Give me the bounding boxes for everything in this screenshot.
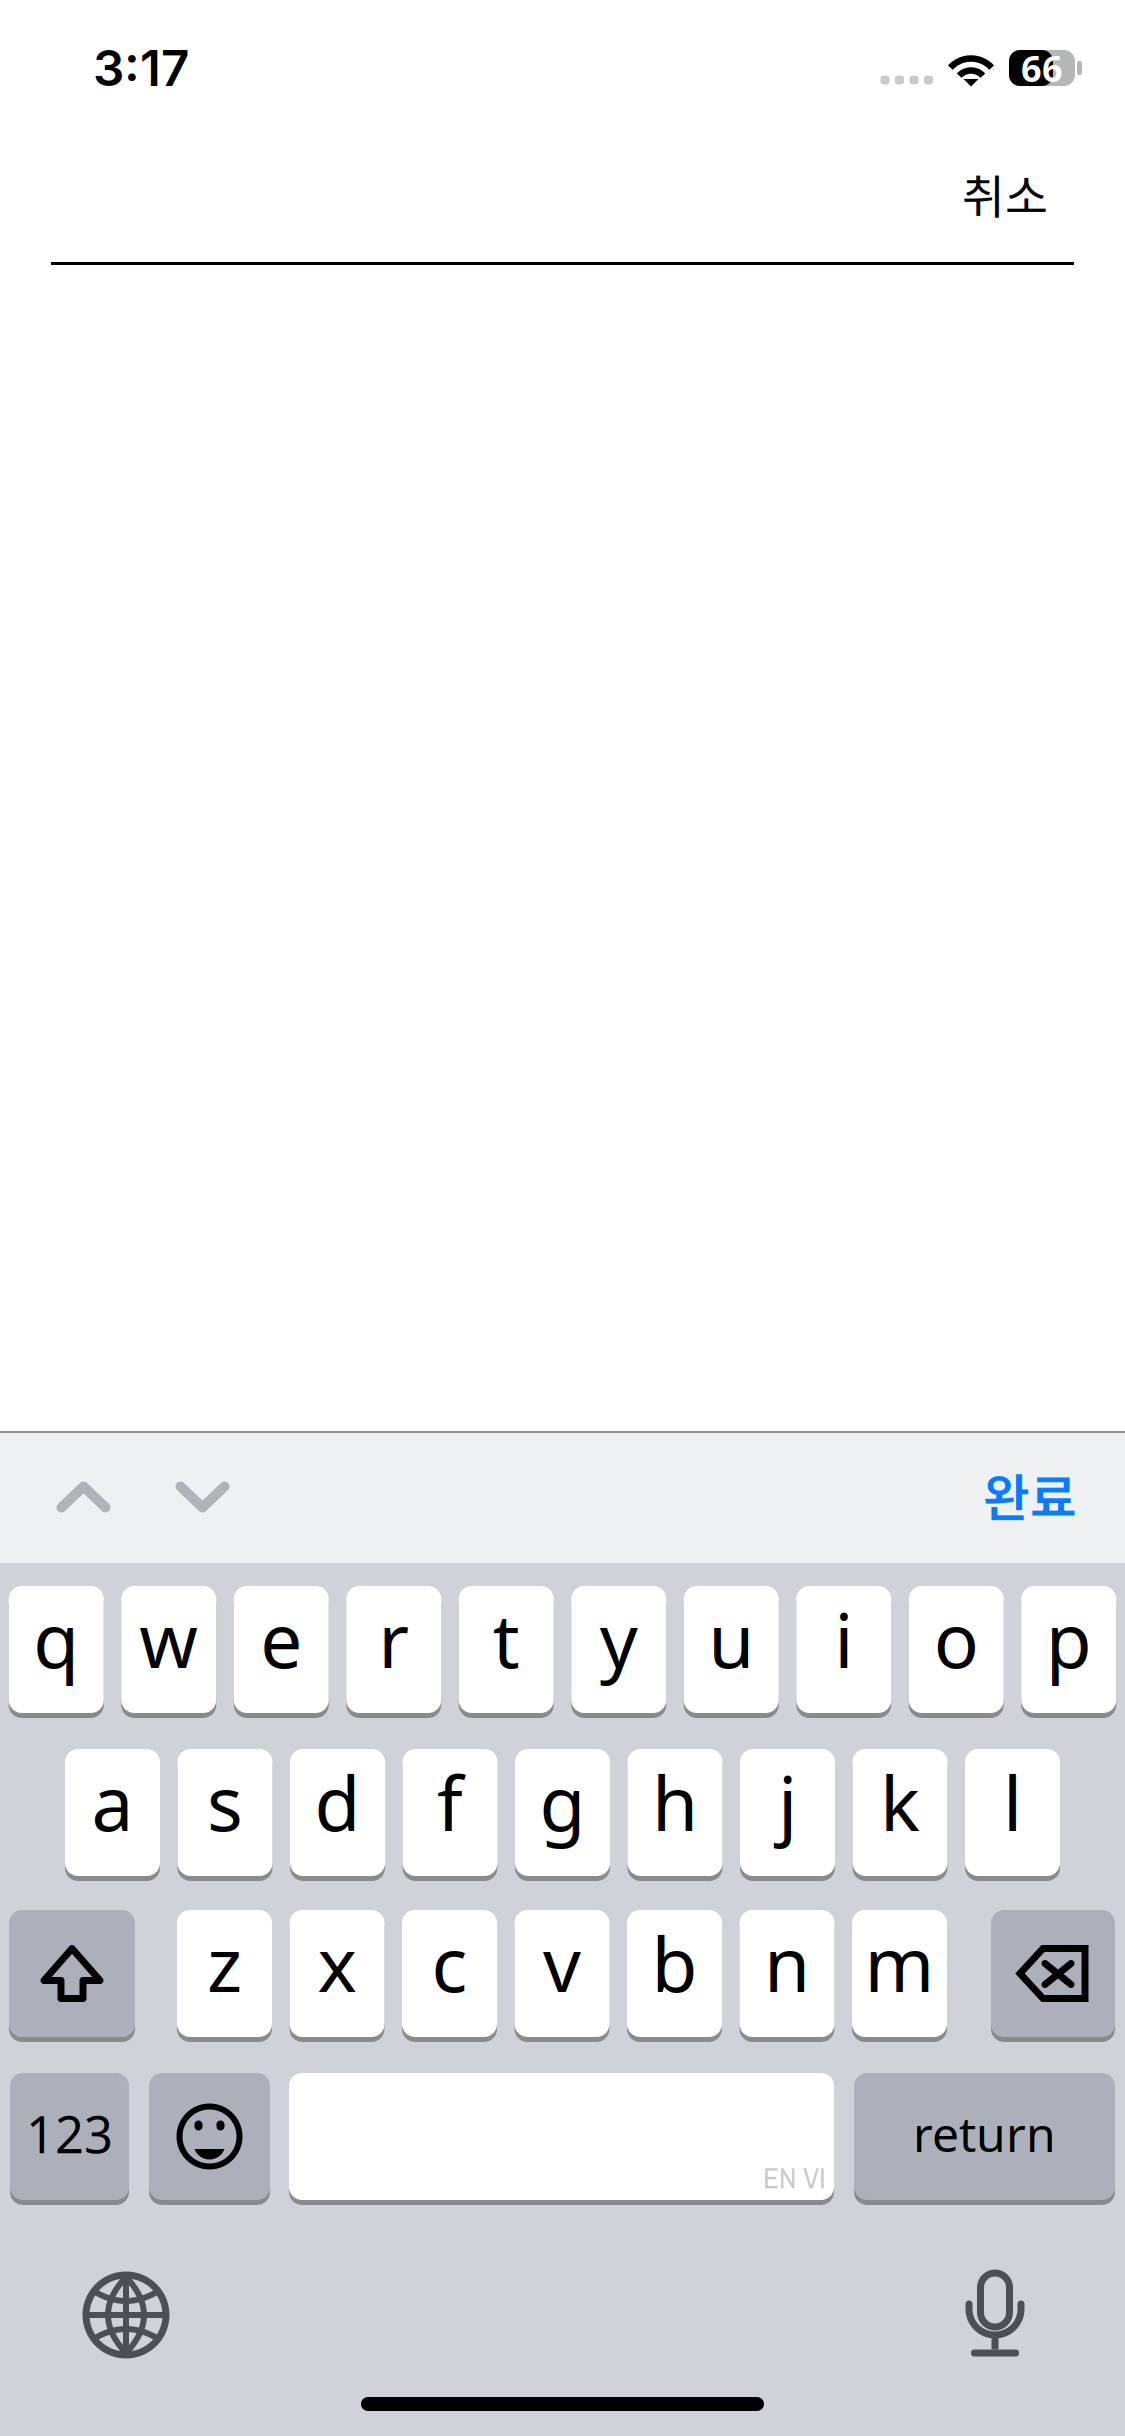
button[interactable]: return: [854, 2073, 1115, 2205]
button[interactable]: a: [65, 1749, 160, 1881]
button[interactable]: 완료: [983, 1458, 1077, 1536]
staticText: q: [33, 1589, 79, 1689]
button[interactable]: b: [627, 1910, 722, 2042]
staticText: k: [880, 1752, 920, 1852]
button[interactable]: n: [739, 1910, 834, 2042]
staticText: w: [139, 1589, 198, 1689]
button[interactable]: 취소: [962, 141, 1125, 227]
button[interactable]: Next field: [143, 1431, 262, 1563]
button[interactable]: q: [9, 1586, 104, 1718]
staticText: t: [493, 1589, 520, 1689]
staticText: d: [314, 1752, 360, 1852]
button[interactable]: h: [627, 1749, 722, 1881]
button[interactable]: Previous field: [24, 1431, 143, 1563]
button[interactable]: d: [290, 1749, 385, 1881]
button[interactable]: f: [402, 1749, 497, 1881]
button[interactable]: o: [909, 1586, 1004, 1718]
button[interactable]: m: [852, 1910, 947, 2042]
button[interactable]: k: [852, 1749, 947, 1881]
staticText: r: [378, 1589, 409, 1689]
button[interactable]: s: [177, 1749, 272, 1881]
button[interactable]: e: [234, 1586, 329, 1718]
button[interactable]: y: [571, 1586, 666, 1718]
button[interactable]: Shift: [9, 1910, 135, 2042]
staticText: a: [91, 1752, 133, 1852]
staticText: g: [539, 1752, 585, 1852]
button[interactable]: p: [1021, 1586, 1116, 1718]
button[interactable]: t: [459, 1586, 554, 1718]
staticText: x: [317, 1913, 356, 2013]
staticText: return: [913, 2102, 1056, 2165]
button[interactable]: Delete: [991, 1910, 1115, 2042]
staticText: h: [652, 1752, 698, 1852]
staticText: z: [207, 1913, 242, 2013]
staticText: c: [431, 1913, 467, 2013]
staticText: 취소: [962, 160, 1048, 227]
button[interactable]: x: [289, 1910, 384, 2042]
button[interactable]: i: [796, 1586, 891, 1718]
staticText: u: [708, 1589, 754, 1689]
button[interactable]: w: [121, 1586, 216, 1718]
staticText: f: [437, 1752, 463, 1852]
staticText: m: [864, 1913, 934, 2013]
button[interactable]: Emoji: [149, 2073, 270, 2205]
button[interactable]: Space: [289, 2073, 834, 2205]
staticText: o: [934, 1589, 979, 1689]
button[interactable]: Dictation: [925, 2245, 1065, 2385]
button[interactable]: c: [402, 1910, 497, 2042]
button[interactable]: 123: [10, 2073, 129, 2205]
button[interactable]: u: [684, 1586, 779, 1718]
staticText: i: [834, 1589, 853, 1689]
staticText: 66: [1021, 44, 1063, 92]
staticText: 123: [26, 2100, 113, 2167]
button[interactable]: j: [740, 1749, 835, 1881]
staticText: e: [260, 1589, 302, 1689]
staticText: s: [207, 1752, 243, 1852]
button[interactable]: v: [514, 1910, 609, 2042]
button[interactable]: l: [965, 1749, 1060, 1881]
button[interactable]: g: [515, 1749, 610, 1881]
staticText: n: [764, 1913, 810, 2013]
staticText: l: [1003, 1752, 1022, 1852]
staticText: p: [1046, 1589, 1092, 1689]
button[interactable]: Next keyboard: [56, 2245, 196, 2385]
staticText: EN VI: [763, 2158, 826, 2197]
staticText: 3:17: [93, 38, 189, 98]
staticText: v: [543, 1913, 581, 2013]
staticText: 완료: [983, 1458, 1077, 1531]
staticText: b: [651, 1913, 697, 2013]
button[interactable]: z: [177, 1910, 272, 2042]
staticText: j: [778, 1752, 797, 1852]
button[interactable]: r: [346, 1586, 441, 1718]
staticText: y: [600, 1589, 638, 1689]
